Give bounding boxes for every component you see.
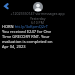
button[interactable]: HORN htt.ly/3xKpmQ2rT You received $247 …: [2, 24, 54, 49]
button[interactable]: Contact avatar: [33, 2, 43, 12]
button[interactable]: Back: [2, 2, 10, 10]
staticText: HORN htt.ly/3xKpmQ2rT You received $247 …: [2, 24, 54, 49]
staticText: Yesterday: [30, 16, 46, 21]
staticText: 6:10 PM: [31, 20, 44, 25]
staticText: +12025550147·via·messages app: [10, 11, 65, 16]
